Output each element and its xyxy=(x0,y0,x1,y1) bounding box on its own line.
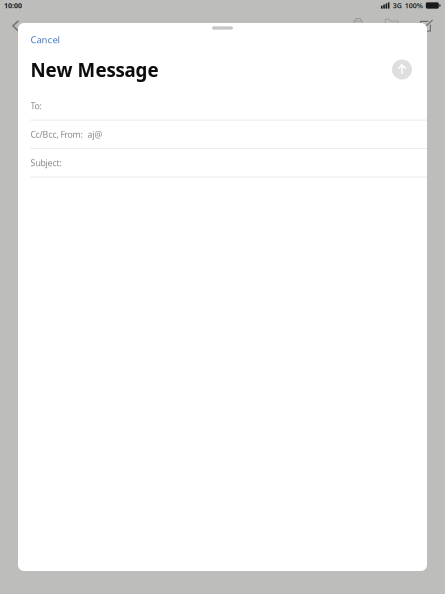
button[interactable]: Cancel xyxy=(18,30,72,49)
staticText: New Message xyxy=(30,57,158,82)
button[interactable]: Cc/Bcc, From: xyxy=(18,120,427,149)
button[interactable]: Subject: xyxy=(18,149,427,177)
button[interactable]: Delete xyxy=(352,14,364,29)
staticText: 100% xyxy=(405,1,423,10)
staticText: Subject: xyxy=(30,157,61,169)
button[interactable]: To: xyxy=(18,92,427,120)
staticText: aj@ xyxy=(87,128,102,140)
staticText: Cancel xyxy=(30,33,59,46)
button[interactable]: Back xyxy=(12,20,19,32)
button[interactable]: Send xyxy=(390,57,414,81)
staticText: 3G xyxy=(393,1,402,10)
staticText: Cc/Bcc, From: xyxy=(30,128,82,140)
button[interactable]: Compose xyxy=(420,21,433,32)
staticText: To: xyxy=(30,100,41,112)
button[interactable]: Move to folder xyxy=(385,13,399,28)
staticText: 10:00 xyxy=(4,1,22,10)
